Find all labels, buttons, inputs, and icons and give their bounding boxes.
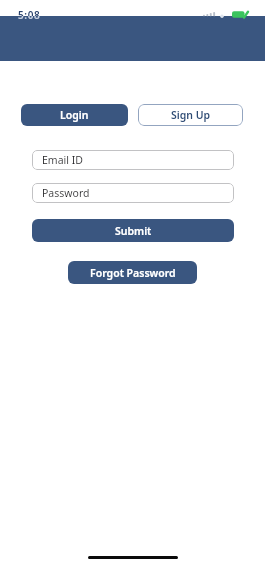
staticText: Login	[60, 108, 89, 122]
staticText: Password	[42, 186, 90, 200]
staticText: Email ID	[42, 153, 83, 167]
staticText: Forgot Password	[90, 266, 176, 280]
button[interactable]: Submit	[32, 219, 234, 242]
button[interactable]: Forgot Password	[68, 261, 197, 284]
staticText: 5:08	[18, 16, 41, 22]
button[interactable]: Email ID	[32, 150, 234, 170]
button[interactable]: Sign Up	[138, 104, 243, 126]
button[interactable]: Password	[32, 183, 234, 203]
staticText: 5:08	[18, 8, 41, 16]
button[interactable]: Login	[21, 104, 128, 126]
staticText: Sign Up	[171, 108, 211, 122]
staticText: Submit	[115, 224, 152, 238]
